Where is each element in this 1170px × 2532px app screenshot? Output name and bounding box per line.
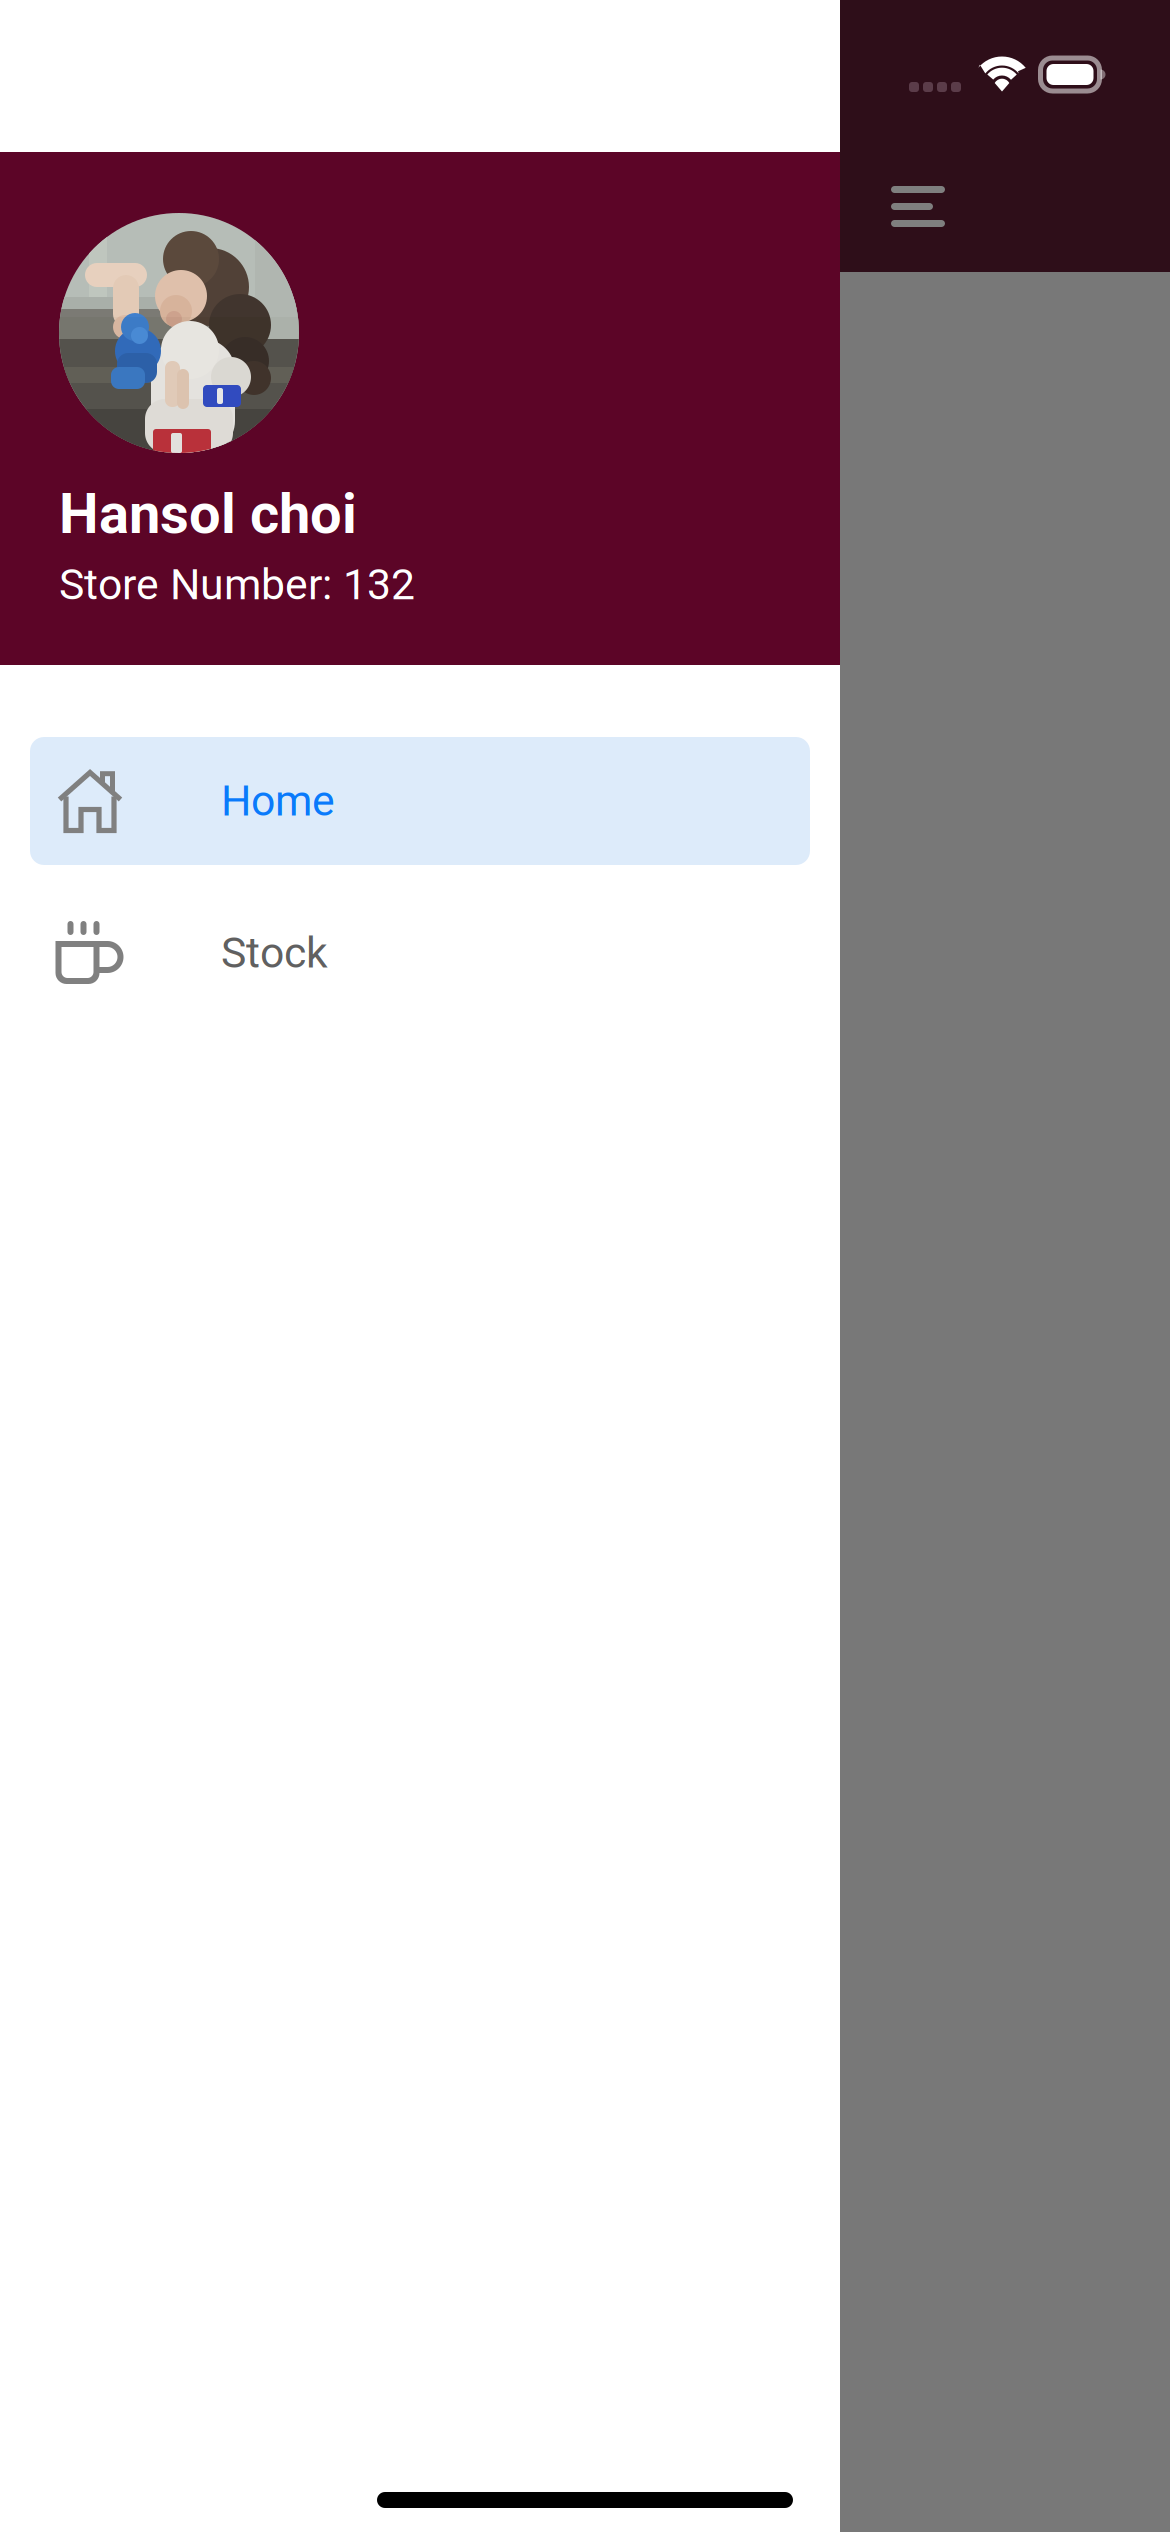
staticText: Store Number: 132 [59, 560, 415, 610]
button[interactable]: Home [30, 737, 810, 865]
staticText: Home [221, 776, 335, 826]
button[interactable]: Stock [30, 889, 810, 1017]
button[interactable]: Menu [891, 188, 945, 225]
staticText: Stock [221, 928, 328, 978]
staticText: Hansol choi [59, 481, 357, 547]
